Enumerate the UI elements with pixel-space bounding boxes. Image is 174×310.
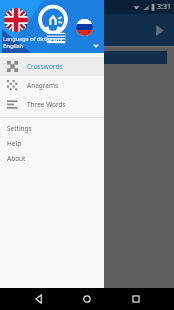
staticText: Three Words <box>27 100 66 109</box>
button[interactable]: Play <box>150 21 168 39</box>
button[interactable]: SEARCH <box>7 51 167 64</box>
staticText: Settings <box>7 124 32 133</box>
button[interactable]: Language of dictionary <box>0 0 104 53</box>
button[interactable]: Change language <box>91 41 101 51</box>
staticText: 3:31 <box>157 2 171 12</box>
button[interactable]: Recents <box>126 289 146 309</box>
button[interactable]: Settings <box>0 121 104 136</box>
button[interactable]: Crosswords <box>0 57 104 76</box>
staticText: Crosswords <box>27 62 63 71</box>
staticText: Help <box>7 139 22 148</box>
button[interactable]: Three Words <box>0 95 104 114</box>
staticText: English <box>3 42 24 50</box>
staticText: Anagrams <box>27 81 59 90</box>
button[interactable]: Back <box>29 289 49 309</box>
staticText: About <box>7 154 26 163</box>
button[interactable]: About <box>0 151 104 166</box>
button[interactable]: Home <box>77 289 97 309</box>
staticText: SEARCH <box>74 53 101 63</box>
button[interactable]: Anagrams <box>0 76 104 95</box>
button[interactable]: Help <box>0 136 104 151</box>
staticText: Language of dictionary <box>3 35 63 42</box>
